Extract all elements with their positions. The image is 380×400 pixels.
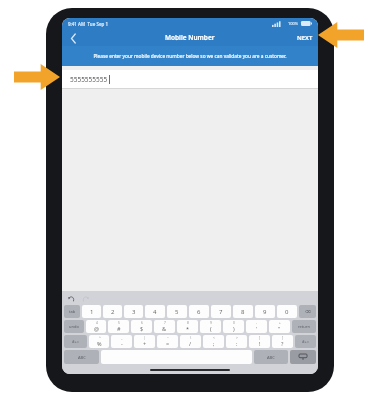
button[interactable]: > — [226, 335, 247, 348]
staticText: 5 — [118, 321, 120, 325]
button[interactable]: 3 — [124, 305, 143, 318]
staticText: #+= — [302, 339, 310, 344]
staticText: - — [121, 340, 123, 347]
staticText: : — [236, 340, 238, 347]
staticText: ) — [233, 325, 235, 332]
button[interactable]: ⌫ — [299, 305, 316, 318]
button[interactable]: _ — [111, 335, 132, 348]
staticText: & — [162, 325, 167, 332]
staticText: 7 — [219, 308, 223, 316]
button[interactable]: undo — [64, 320, 84, 333]
button[interactable]: + — [269, 320, 290, 333]
button[interactable]: 7 — [154, 320, 175, 333]
staticText: " — [278, 325, 281, 332]
button[interactable]: ] — [272, 335, 293, 348]
staticText: > — [236, 336, 238, 340]
staticText: 5555555555 — [70, 75, 108, 84]
staticText: ; — [213, 340, 215, 347]
button[interactable]: return — [292, 320, 316, 333]
staticText: ] — [282, 336, 284, 340]
staticText: 6 — [141, 321, 143, 325]
staticText: 1 — [90, 308, 94, 316]
staticText: 2 — [111, 308, 115, 316]
button[interactable]: 6 — [131, 320, 152, 333]
button[interactable]: | — [134, 335, 155, 348]
button[interactable]: 5 — [108, 320, 129, 333]
staticText: ? — [281, 340, 284, 347]
staticText: ! — [259, 340, 261, 347]
staticText: = — [166, 340, 170, 347]
button[interactable]: #+= — [64, 335, 87, 348]
button[interactable]: tab — [64, 305, 80, 318]
button[interactable]: < — [203, 335, 224, 348]
button[interactable]: 2 — [103, 305, 122, 318]
button[interactable]: ^ — [89, 335, 109, 348]
staticText: 6 — [197, 308, 201, 316]
staticText: ABC — [267, 355, 275, 360]
button[interactable]: 5 — [167, 305, 187, 318]
button[interactable]: \ — [180, 335, 201, 348]
staticText: 4 — [153, 308, 157, 316]
staticText: [ — [259, 336, 261, 340]
staticText: Please enter your mobile device number b… — [93, 53, 287, 60]
button[interactable]: 8 — [177, 320, 198, 333]
staticText: @ — [94, 325, 99, 332]
staticText: 9:41 AM Tue Sep 1 — [68, 21, 109, 27]
button[interactable]: [ — [249, 335, 270, 348]
staticText: tab — [69, 309, 76, 314]
button[interactable]: 1 — [82, 305, 101, 318]
staticText: < — [213, 336, 215, 340]
staticText: undo — [69, 324, 79, 329]
button[interactable]: Back — [65, 30, 81, 46]
staticText: % — [97, 340, 102, 347]
button[interactable]: #+= — [295, 335, 316, 348]
button[interactable]: Hide keyboard — [290, 350, 316, 364]
staticText: $ — [140, 325, 144, 332]
button[interactable]: 6 — [189, 305, 209, 318]
staticText: ( — [210, 325, 212, 332]
staticText: 100% — [288, 21, 299, 26]
staticText: ~ — [167, 336, 169, 340]
staticText: NEXT — [297, 34, 313, 42]
button[interactable]: 0 — [223, 320, 244, 333]
button[interactable]: Redo — [80, 293, 90, 303]
staticText: 8 — [241, 308, 245, 316]
button[interactable]: - — [246, 320, 267, 333]
staticText: 0 — [285, 308, 289, 316]
button[interactable]: Undo — [66, 293, 76, 303]
staticText: * — [186, 325, 190, 332]
button[interactable]: 9 — [255, 305, 275, 318]
staticText: / — [189, 340, 192, 347]
staticText: \ — [190, 336, 192, 340]
staticText: 3 — [132, 308, 136, 316]
staticText: 8 — [187, 321, 189, 325]
staticText: | — [144, 336, 146, 340]
button[interactable]: NEXT — [297, 34, 313, 42]
staticText: 0 — [233, 321, 235, 325]
button[interactable]: 0 — [277, 305, 297, 318]
staticText: ^ — [99, 336, 101, 340]
staticText: + — [279, 321, 281, 325]
staticText: 7 — [164, 321, 166, 325]
staticText: ABC — [78, 355, 86, 360]
staticText: - — [256, 321, 258, 325]
staticText: ' — [256, 325, 258, 332]
button[interactable]: 7 — [211, 305, 231, 318]
staticText: 4 — [96, 321, 98, 325]
button[interactable]: 5555555555 — [70, 70, 318, 88]
staticText: return — [298, 324, 310, 329]
button[interactable]: 8 — [233, 305, 253, 318]
staticText: _ — [121, 336, 123, 340]
button[interactable]: ABC — [64, 350, 99, 364]
button[interactable]: 4 — [145, 305, 165, 318]
staticText: + — [143, 340, 147, 347]
staticText: 9 — [210, 321, 212, 325]
button[interactable]: 9 — [200, 320, 221, 333]
button[interactable]: ~ — [157, 335, 178, 348]
staticText: ⌫ — [305, 309, 311, 314]
staticText: 9 — [263, 308, 267, 316]
button[interactable]: 4 — [86, 320, 106, 333]
button[interactable]: ABC — [254, 350, 288, 364]
staticText: Mobile Number — [165, 33, 215, 42]
